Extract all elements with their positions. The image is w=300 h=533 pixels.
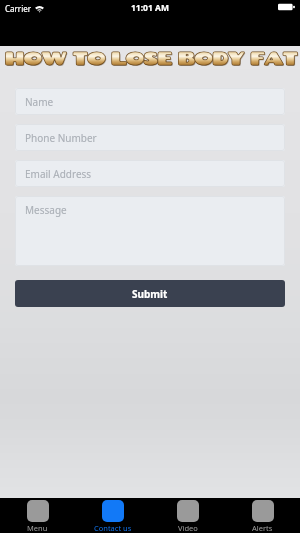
button[interactable]: Video xyxy=(150,498,225,533)
staticText: HOW TO LOSE BODY FAT xyxy=(4,47,297,69)
staticText: HOW TO LOSE BODY FAT xyxy=(4,47,297,69)
button[interactable]: Message xyxy=(15,196,285,266)
staticText: Phone Number xyxy=(25,131,97,145)
other: Battery xyxy=(278,3,295,11)
button[interactable]: Submit xyxy=(15,280,285,307)
staticText: Email Address xyxy=(25,167,92,181)
other: Wi-Fi xyxy=(35,5,44,13)
staticText: 11:01 AM xyxy=(131,2,169,14)
staticText: Name xyxy=(25,95,54,109)
button[interactable]: Phone Number xyxy=(15,124,285,151)
staticText: Submit xyxy=(132,287,168,301)
staticText: Video xyxy=(178,523,198,533)
staticText: Contact us xyxy=(94,523,132,533)
staticText: Message xyxy=(25,203,67,217)
button[interactable]: Contact us xyxy=(75,498,150,533)
staticText: Carrier xyxy=(5,3,32,14)
button[interactable]: Menu xyxy=(0,498,75,533)
staticText: HOW TO LOSE BODY FAT xyxy=(4,47,297,69)
staticText: Menu xyxy=(27,523,48,533)
button[interactable]: Name xyxy=(15,88,285,115)
button[interactable]: Email Address xyxy=(15,160,285,187)
staticText: HOW TO LOSE BODY FAT xyxy=(5,48,298,70)
staticText: Alerts xyxy=(252,523,273,533)
button[interactable]: Alerts xyxy=(225,498,300,533)
